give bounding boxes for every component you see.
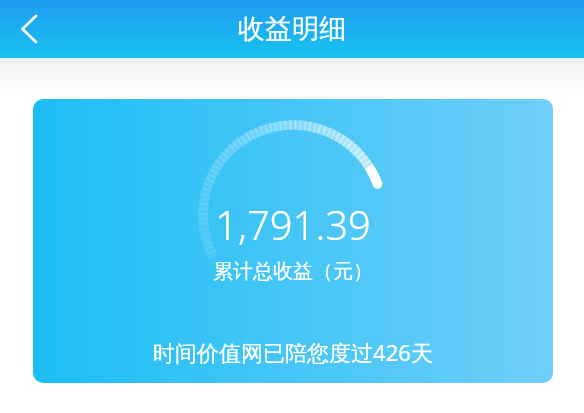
staticText: 1,791.39	[33, 197, 553, 251]
button[interactable]: 1,791.39	[33, 99, 553, 383]
staticText: 收益明细	[238, 12, 346, 46]
staticText: 时间价值网已陪您度过426天	[33, 337, 553, 367]
button[interactable]: Back	[8, 7, 52, 51]
staticText: 累计总收益（元）	[33, 259, 553, 284]
